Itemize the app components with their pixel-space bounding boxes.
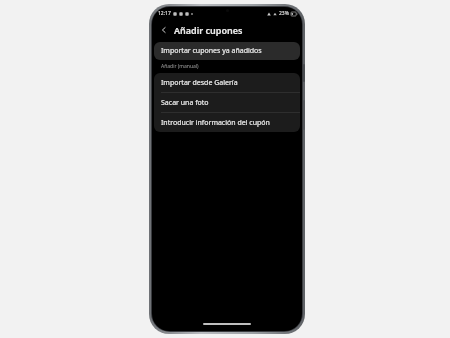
staticText: Importar cupones ya añadidos [161, 46, 262, 56]
staticText: 12:17 [158, 10, 171, 17]
button[interactable]: Introducir información del cupón [154, 113, 300, 132]
button[interactable]: Importar cupones ya añadidos [154, 42, 300, 60]
button[interactable]: Sacar una foto [154, 93, 300, 112]
button[interactable]: Importar desde Galería [154, 73, 300, 92]
staticText: Importar desde Galería [161, 78, 238, 88]
staticText: Añadir (manual) [161, 63, 199, 70]
staticText: Introducir información del cupón [161, 118, 270, 128]
button[interactable]: Back [157, 23, 171, 37]
staticText: Sacar una foto [161, 98, 209, 108]
staticText: Añadir cupones [174, 24, 243, 36]
staticText: 23% [279, 10, 289, 17]
